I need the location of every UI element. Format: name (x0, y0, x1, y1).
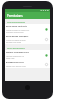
staticText: Read phone numbers (6, 35, 29, 38)
staticText: Other permissions (7, 47, 25, 50)
staticText: contacts information (6, 31, 24, 33)
staticText: Active permissions (7, 21, 25, 24)
button[interactable]: Permissions (5, 12, 50, 19)
button[interactable]: Modify incoming calls (5, 50, 50, 60)
staticText: Permissions (7, 14, 23, 18)
button[interactable]: Read phone numbers (5, 34, 50, 44)
staticText: Background sync (6, 61, 24, 64)
button[interactable]: Disabled (44, 62, 49, 67)
staticText: Allows the app to read your (6, 29, 30, 31)
staticText: number and state (6, 41, 22, 43)
staticText: Keeps your data in sync (6, 65, 26, 67)
button[interactable]: Disabled (44, 37, 49, 42)
staticText: voice calls (6, 57, 15, 59)
button[interactable]: Enabled (44, 27, 49, 32)
staticText: Access to device phone (6, 39, 26, 41)
staticText: Handle redirection of (6, 55, 24, 57)
staticText: Read voice contacts (6, 25, 27, 28)
button[interactable]: Background sync (5, 60, 50, 68)
button[interactable]: Home (25, 85, 30, 90)
button[interactable]: Read voice contacts (5, 24, 50, 34)
staticText: Modify incoming calls (6, 51, 29, 54)
button[interactable]: Enabled (44, 53, 49, 58)
